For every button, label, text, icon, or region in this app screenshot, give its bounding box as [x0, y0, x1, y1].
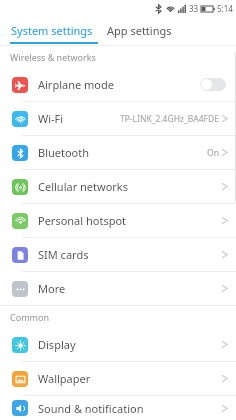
staticText: Wi-Fi [38, 111, 64, 126]
button[interactable]: App settings [106, 19, 173, 42]
staticText: System settings [11, 23, 93, 38]
staticText: Wireless & networks [10, 51, 96, 63]
button[interactable]: Wallpaper [0, 362, 236, 395]
button[interactable]: Bluetooth [0, 136, 236, 169]
button[interactable]: System settings [10, 19, 94, 42]
staticText: App settings [107, 23, 172, 38]
staticText: Sound & notification [38, 401, 144, 416]
button[interactable]: Wi-Fi [0, 102, 236, 135]
staticText: On [207, 147, 219, 159]
button[interactable]: Personal hotspot [0, 204, 236, 237]
staticText: Wallpaper [38, 371, 91, 386]
button[interactable]: Cellular networks [0, 170, 236, 203]
button[interactable]: Sound & notification [0, 396, 236, 420]
staticText: SIM cards [38, 247, 89, 262]
button[interactable]: More [0, 272, 236, 305]
staticText: Personal hotspot [38, 213, 127, 228]
staticText: Common [10, 311, 49, 323]
staticText: TP-LINK_2.4GHz_BA4FDE [120, 113, 219, 125]
staticText: More [38, 281, 66, 296]
staticText: 5:14 [217, 3, 233, 14]
staticText: 33 [189, 3, 199, 14]
staticText: Airplane mode [38, 77, 114, 92]
button[interactable]: Display [0, 328, 236, 361]
button[interactable]: Airplane mode toggle [200, 78, 226, 91]
staticText: Bluetooth [38, 145, 90, 160]
staticText: Cellular networks [38, 179, 129, 194]
button[interactable]: Airplane mode [0, 68, 236, 101]
button[interactable]: SIM cards [0, 238, 236, 271]
staticText: Display [38, 337, 76, 352]
